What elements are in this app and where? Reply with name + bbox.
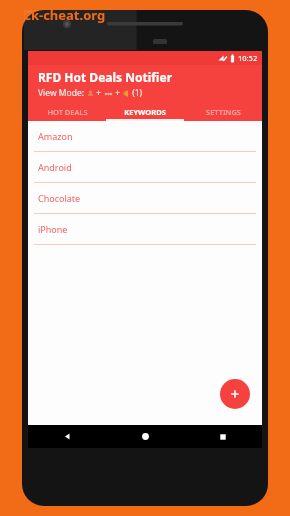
- button[interactable]: iPhone: [28, 214, 262, 245]
- button[interactable]: Recent apps: [184, 425, 262, 448]
- button[interactable]: Add keyword: [220, 379, 250, 409]
- button[interactable]: Home: [106, 425, 184, 448]
- staticText: +: [113, 87, 123, 99]
- staticText: KEYWORDS: [124, 107, 166, 117]
- button[interactable]: KEYWORDS: [106, 103, 184, 121]
- staticText: hack-cheat.org: [8, 6, 106, 24]
- staticText: Chocolate: [38, 192, 81, 204]
- button[interactable]: Android: [28, 152, 262, 183]
- button[interactable]: Amazon: [28, 121, 262, 152]
- button[interactable]: SETTINGS: [184, 103, 262, 121]
- staticText: +: [94, 87, 104, 99]
- staticText: Android: [38, 161, 72, 173]
- staticText: 10:52: [238, 53, 258, 63]
- staticText: Amazon: [38, 130, 73, 142]
- staticText: iPhone: [38, 223, 68, 235]
- button[interactable]: HOT DEALS: [28, 103, 106, 121]
- staticText: RFD Hot Deals Notifier: [38, 69, 173, 85]
- button[interactable]: Chocolate: [28, 183, 262, 214]
- staticText: (1): [130, 87, 143, 99]
- staticText: View Mode:: [38, 87, 87, 99]
- staticText: SETTINGS: [206, 107, 241, 117]
- button[interactable]: Back: [28, 425, 106, 448]
- staticText: HOT DEALS: [47, 107, 88, 117]
